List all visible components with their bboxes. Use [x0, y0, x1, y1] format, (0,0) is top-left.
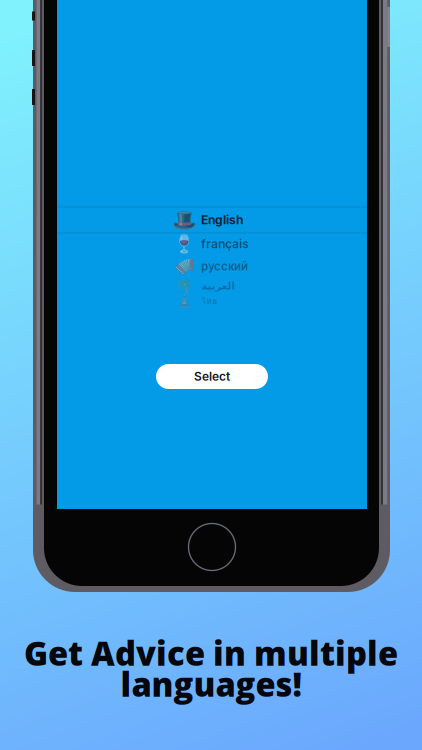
staticText: 🌴 — [175, 277, 193, 295]
staticText: 🛕 — [176, 294, 191, 308]
staticText: languages! — [120, 662, 301, 706]
staticText: العربية — [201, 280, 234, 292]
staticText: Get Advice in multiple — [24, 631, 398, 675]
staticText: 🎩 — [171, 208, 196, 232]
staticText: русский — [201, 260, 248, 273]
staticText: English — [201, 213, 243, 227]
staticText: Select — [194, 369, 230, 384]
staticText: 🪗 — [173, 257, 194, 276]
staticText: 🍷 — [173, 233, 195, 255]
staticText: français — [201, 237, 249, 251]
button[interactable]: Select — [156, 364, 268, 389]
staticText: ไทย — [201, 294, 217, 308]
